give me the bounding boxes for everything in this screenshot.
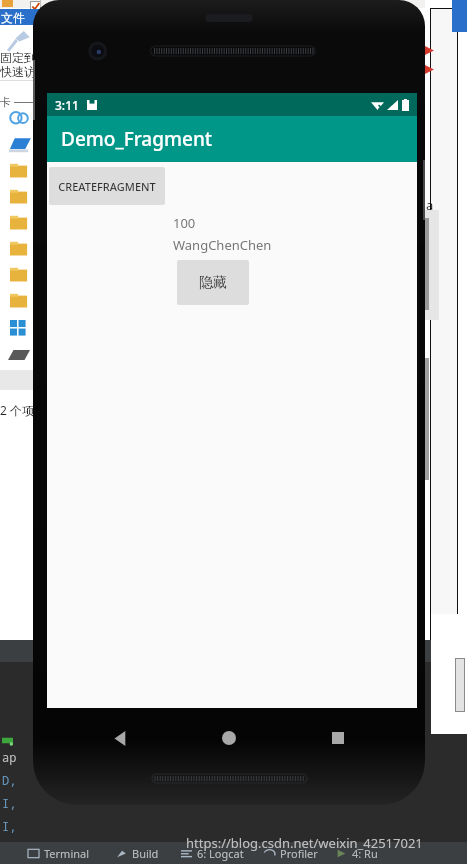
staticText: 文件 xyxy=(1,10,25,25)
staticText: WangChenChen xyxy=(173,236,272,254)
staticText: I, xyxy=(2,795,17,811)
staticText: 固定到 xyxy=(0,50,36,65)
staticText: 3:11 xyxy=(55,97,79,113)
button[interactable]: Terminal xyxy=(26,846,92,861)
staticText: Build xyxy=(132,846,159,861)
staticText: 快速访 xyxy=(0,64,36,79)
staticText: I, xyxy=(2,818,17,834)
staticText: 卡 xyxy=(0,95,11,109)
staticText: https://blog.csdn.net/weixin_42517021 xyxy=(186,834,423,852)
staticText: 2 个项 xyxy=(0,402,34,418)
staticText: 40 : xyxy=(436,720,465,736)
staticText: 4: Ru xyxy=(352,846,378,861)
staticText: 100 xyxy=(173,214,196,232)
staticText: ap xyxy=(2,749,17,765)
staticText: D, xyxy=(2,772,17,788)
staticText: 6: Logcat xyxy=(197,846,244,861)
staticText: 隐藏 xyxy=(199,274,227,292)
staticText: Terminal xyxy=(44,846,90,861)
staticText: Profiler xyxy=(280,846,318,861)
button[interactable]: Home xyxy=(207,716,251,760)
button[interactable]: Profiler xyxy=(262,846,320,861)
staticText: Demo_Fragment xyxy=(61,126,213,152)
button[interactable]: CREATEFRAGMENT xyxy=(49,167,165,205)
button[interactable]: 4: Ru xyxy=(334,846,380,861)
button[interactable]: Back xyxy=(98,716,142,760)
staticText: CREATEFRAGMENT xyxy=(58,179,156,194)
button[interactable]: Recent apps xyxy=(316,716,360,760)
button[interactable]: 6: Logcat xyxy=(179,846,246,861)
button[interactable]: 隐藏 xyxy=(177,260,249,305)
button[interactable]: Build xyxy=(114,846,161,861)
staticText: a xyxy=(426,196,434,214)
